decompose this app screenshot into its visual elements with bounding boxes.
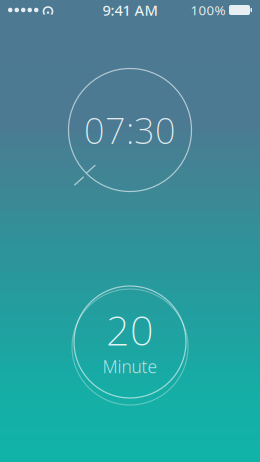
staticText: Minute bbox=[102, 355, 157, 378]
staticText: 07:30 bbox=[84, 106, 176, 154]
staticText: 100% bbox=[190, 1, 225, 19]
button[interactable]: Duration 20 minutes bbox=[60, 277, 200, 407]
button[interactable]: Alarm time 07:30 bbox=[60, 60, 200, 200]
staticText: 9:41 AM bbox=[102, 0, 157, 20]
staticText: 20 bbox=[106, 302, 154, 357]
